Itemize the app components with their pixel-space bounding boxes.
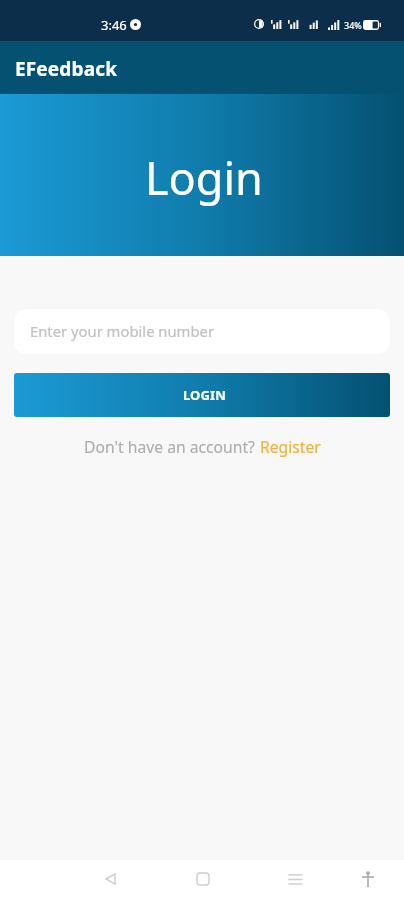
button[interactable]: Accessibility <box>346 859 390 899</box>
staticText: LOGIN <box>183 386 226 404</box>
staticText: 3:46 <box>101 16 127 34</box>
staticText: Enter your mobile number <box>30 321 215 341</box>
button[interactable]: Back <box>88 859 132 899</box>
staticText: Don't have an account? <box>84 436 260 457</box>
button[interactable]: Home <box>181 859 225 899</box>
staticText: EFeedback <box>15 56 118 82</box>
staticText: Login <box>145 147 263 208</box>
button[interactable]: Recent apps <box>273 859 317 899</box>
button[interactable]: Register <box>260 436 321 457</box>
button[interactable]: LOGIN <box>14 373 390 417</box>
staticText: 34% <box>344 19 362 31</box>
button[interactable]: Enter your mobile number <box>14 309 390 354</box>
